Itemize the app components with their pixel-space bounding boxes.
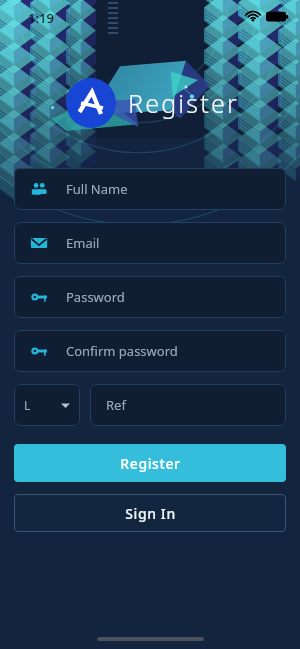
button[interactable]: Ref	[90, 384, 286, 426]
staticText: 1:19	[28, 9, 54, 27]
staticText: Password	[66, 288, 125, 306]
staticText: Register	[120, 454, 181, 473]
button[interactable]: Password	[14, 276, 286, 318]
staticText: Register	[128, 86, 240, 120]
staticText: Confirm password	[66, 342, 178, 360]
staticText: Sign In	[125, 504, 176, 523]
staticText: Full Name	[66, 180, 128, 198]
button[interactable]: L	[14, 384, 80, 426]
button[interactable]: Confirm password	[14, 330, 286, 372]
staticText: L	[24, 397, 31, 413]
button[interactable]: Email	[14, 222, 286, 264]
button[interactable]: Full Name	[14, 168, 286, 210]
button[interactable]: Register	[14, 444, 286, 482]
staticText: Ref	[106, 396, 126, 414]
button[interactable]: Sign In	[14, 494, 286, 532]
staticText: Email	[66, 234, 100, 252]
other: App logo	[66, 78, 116, 128]
